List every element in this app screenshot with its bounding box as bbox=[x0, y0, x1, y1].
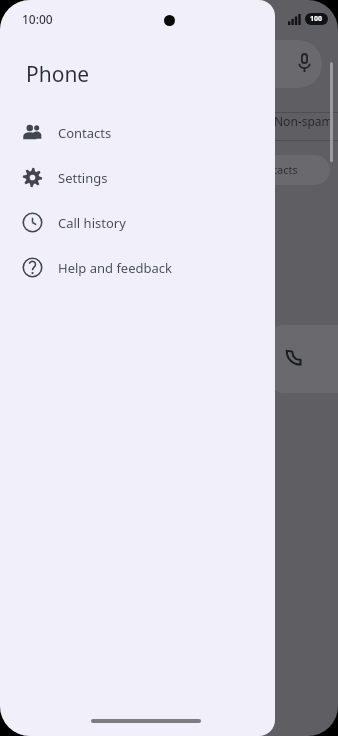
staticText: Non-spam bbox=[274, 113, 333, 129]
staticText: Call history bbox=[58, 214, 126, 232]
button[interactable]: Settings bbox=[0, 155, 275, 200]
staticText: 10:00 bbox=[22, 11, 53, 27]
button[interactable]: Call history bbox=[0, 200, 275, 245]
staticText: Contacts bbox=[58, 124, 112, 142]
staticText: Settings bbox=[58, 169, 108, 187]
staticText: 100 bbox=[310, 14, 323, 24]
button[interactable]: Contacts bbox=[0, 110, 275, 155]
button[interactable]: Help and feedback bbox=[0, 245, 275, 290]
staticText: tacts bbox=[273, 162, 298, 177]
staticText: Phone bbox=[26, 60, 90, 89]
staticText: Help and feedback bbox=[58, 259, 172, 277]
